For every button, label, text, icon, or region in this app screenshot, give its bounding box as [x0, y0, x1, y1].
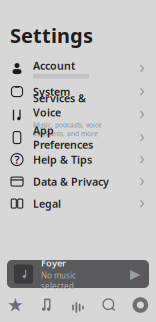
staticText: ? [14, 152, 19, 167]
button[interactable]: Legal [0, 193, 156, 215]
staticText: Foyer [41, 257, 66, 269]
button[interactable]: Account [0, 57, 156, 81]
staticText: Music, podcasts, voice assistants, and m… [33, 120, 102, 138]
staticText: Legal [33, 196, 61, 211]
button[interactable]: Services & Voice [0, 103, 156, 127]
staticText: ★ [7, 294, 24, 316]
button[interactable]: Music [31, 292, 62, 318]
staticText: Services & Voice [33, 91, 86, 119]
button[interactable]: Search [94, 292, 125, 318]
button[interactable]: Settings [125, 292, 156, 318]
staticText: Settings [10, 22, 93, 49]
staticText: Account [33, 58, 75, 73]
button[interactable]: Levels [62, 292, 94, 318]
staticText: Help & Tips [33, 152, 92, 167]
staticText: No music selected [41, 270, 76, 291]
button[interactable]: ? [0, 149, 156, 171]
button[interactable]: Data & Privacy [0, 171, 156, 193]
staticText: App Preferences [33, 123, 93, 152]
button[interactable]: Play [128, 267, 142, 281]
staticText: Data & Privacy [33, 174, 109, 189]
staticText: System [33, 84, 70, 99]
button[interactable]: Now playing, Foyer, No music selected [7, 260, 149, 288]
button[interactable]: Favorites [0, 292, 31, 318]
staticText: ▶ [130, 266, 140, 281]
button[interactable]: System [0, 81, 156, 103]
button[interactable]: App Preferences [0, 127, 156, 149]
